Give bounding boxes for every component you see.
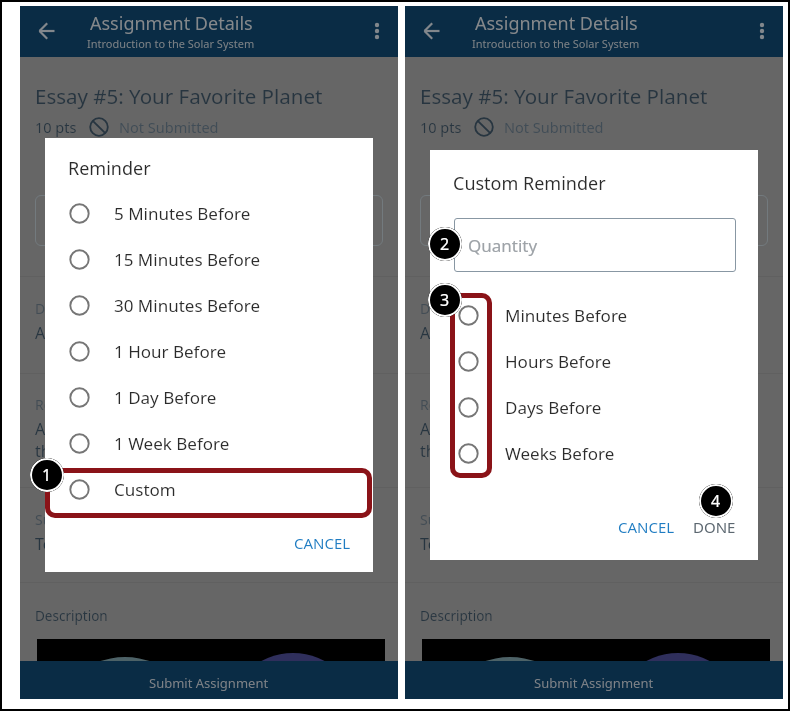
staticText: Description [420,607,493,625]
staticText: Essay #5: Your Favorite Planet [420,82,708,110]
button[interactable]: Days Before [430,384,758,430]
button[interactable]: Back [414,13,450,49]
button[interactable]: CANCEL [611,510,681,544]
staticText: Essay #5: Your Favorite Planet [35,82,323,110]
button[interactable]: More options [360,14,394,48]
staticText: Submission [420,510,496,529]
staticText: Custom [114,478,176,501]
staticText: 1 Day Before [114,386,217,409]
staticText: 10 pts [420,117,462,137]
staticText: 5 Minutes Before [114,202,251,225]
button[interactable] [35,195,383,246]
button[interactable]: DONE [686,510,742,544]
button[interactable]: Weeks Before [430,430,758,476]
staticText: Minutes Before [505,304,628,327]
button[interactable]: 15 Minutes Before [45,236,373,282]
staticText: CANCEL [294,533,351,553]
button[interactable]: Quantity [454,218,736,272]
staticText: Weeks Before [505,442,615,465]
staticText: 1 Hour Before [114,340,227,363]
staticText: Days Before [505,396,602,419]
staticText: Apr 7 at 11:59 PM [35,322,168,344]
button[interactable]: Submit Assignment [405,661,783,699]
staticText: CANCEL [618,517,675,537]
staticText: Description [35,607,108,625]
staticText: 15 Minutes Before [114,248,261,271]
staticText: 4 [711,490,721,512]
staticText: Due [35,299,62,318]
staticText: Reminder [420,395,485,414]
staticText: Submit Assignment [149,674,269,692]
button[interactable]: Submit Assignment [20,661,398,699]
staticText: 2 [440,233,450,255]
button[interactable]: 1 Week Before [45,420,373,466]
staticText: Introduction to the Solar System [472,36,640,51]
staticText: Custom Reminder [453,171,606,196]
button[interactable]: More options [745,14,779,48]
staticText: Assignment Details [90,11,253,36]
staticText: Text Entry [35,533,110,555]
button[interactable]: 1 Hour Before [45,328,373,374]
button[interactable] [420,195,768,246]
staticText: DONE [693,517,736,537]
staticText: Apr 7 at 11:59 PM [420,322,553,344]
button[interactable]: 5 Minutes Before [45,190,373,236]
staticText: Text Entry [420,533,495,555]
staticText: Reminder [35,395,100,414]
button[interactable]: Back [29,13,65,49]
button[interactable]: Hours Before [430,338,758,384]
staticText: 10 pts [35,117,77,137]
staticText: Reminder [68,156,151,181]
button[interactable]: Custom [45,466,373,512]
staticText: Hours Before [505,350,612,373]
staticText: this assignment [420,440,540,462]
staticText: Add a reminder about [35,418,201,440]
staticText: 30 Minutes Before [114,294,261,317]
staticText: Due [420,299,447,318]
button[interactable]: 1 Day Before [45,374,373,420]
staticText: 1 [42,464,52,486]
staticText: this assignment [35,440,155,462]
button[interactable]: CANCEL [289,526,355,560]
staticText: Submission [35,510,111,529]
staticText: Assignment Details [475,11,638,36]
staticText: Quantity [468,234,538,257]
staticText: Submit Assignment [534,674,654,692]
staticText: 1 Week Before [114,432,230,455]
button[interactable]: 30 Minutes Before [45,282,373,328]
staticText: Add a reminder about [420,418,586,440]
staticText: 3 [440,289,450,311]
button[interactable]: Minutes Before [430,292,758,338]
staticText: Not Submitted [119,117,219,137]
staticText: Not Submitted [504,117,604,137]
staticText: Introduction to the Solar System [87,36,255,51]
